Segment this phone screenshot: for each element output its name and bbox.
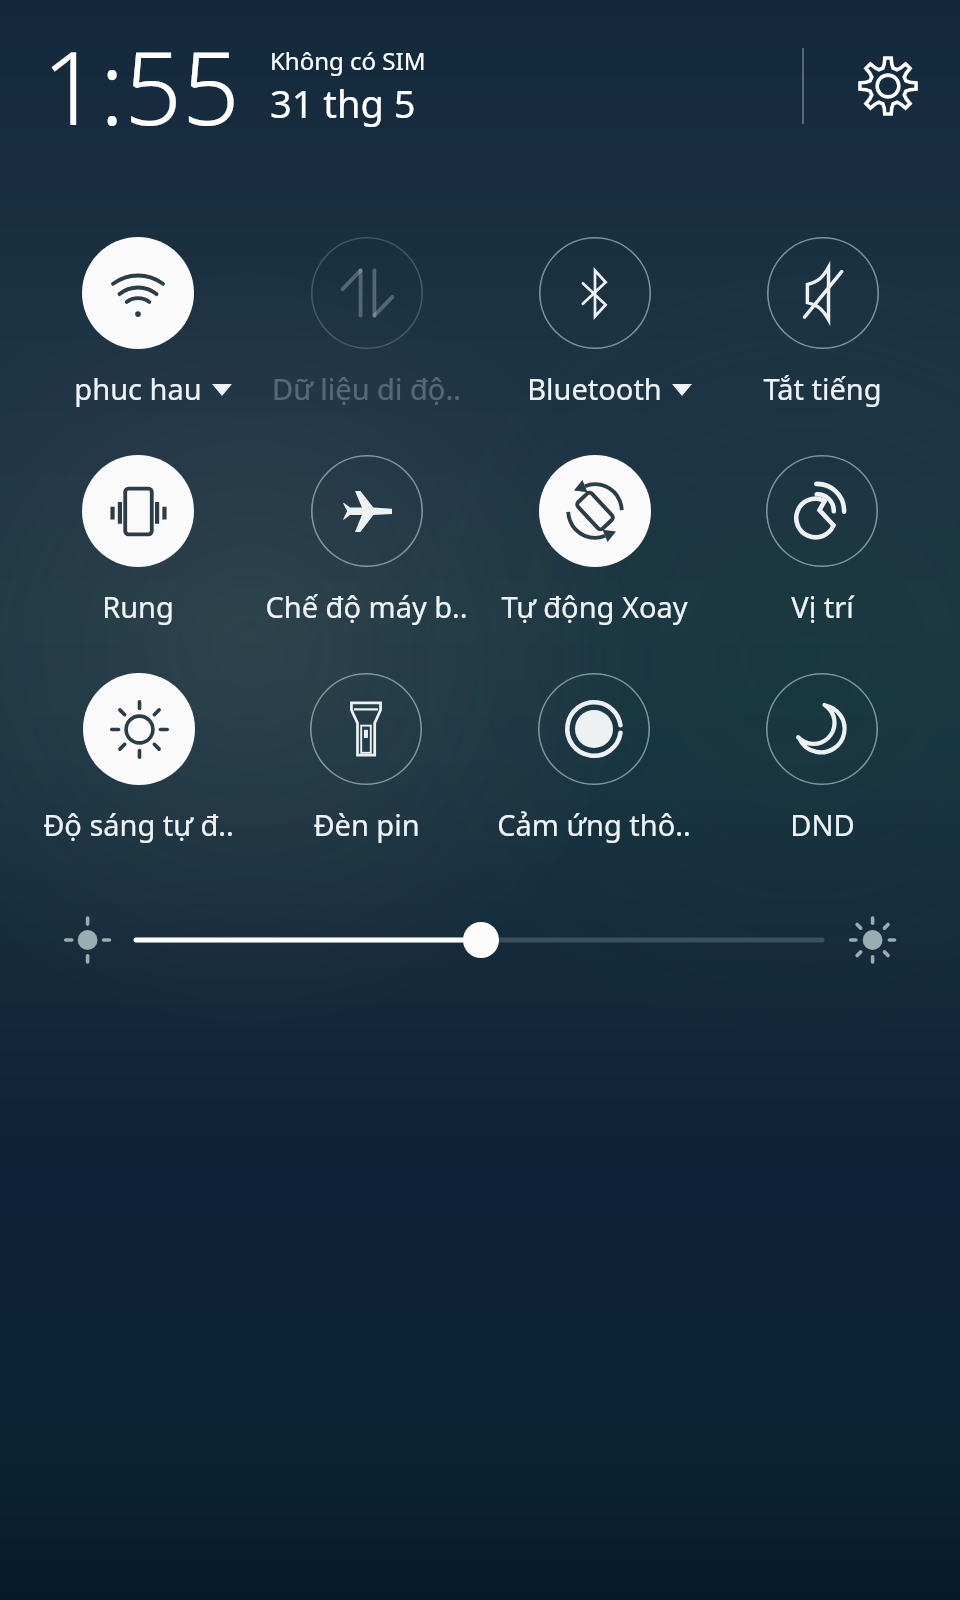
staticText: Tự động Xoay (501, 587, 688, 626)
staticText: Đèn pin (313, 805, 420, 844)
staticText: 1:55 (42, 17, 240, 155)
staticText: Độ sáng tự đ.. (43, 805, 234, 844)
staticText: Rung (102, 587, 174, 626)
button[interactable]: Độ sáng tự đ.. (43, 673, 234, 844)
staticText: 31 thg 5 (270, 77, 416, 129)
button[interactable]: Settings (840, 38, 936, 134)
staticText: Cảm ứng thô.. (497, 805, 691, 844)
staticText: Dữ liệu di độ.. (272, 369, 461, 408)
staticText: phuc hau (74, 369, 202, 408)
button[interactable]: Brightness (0, 885, 960, 995)
button[interactable]: phuc hau (74, 237, 202, 408)
staticText: Chế độ máy b.. (265, 587, 468, 626)
staticText: Vị trí (791, 587, 854, 626)
button[interactable]: Rung (82, 455, 194, 626)
button[interactable]: Đèn pin (310, 673, 422, 844)
button[interactable]: Tự động Xoay (501, 455, 688, 626)
button[interactable]: Bluetooth (527, 237, 662, 408)
button[interactable]: Dữ liệu di độ.. (272, 237, 461, 408)
button[interactable]: Cảm ứng thô.. (497, 673, 691, 844)
staticText: Không có SIM (270, 44, 426, 77)
staticText: Tắt tiếng (763, 369, 882, 408)
button[interactable]: Chế độ máy b.. (265, 455, 468, 626)
staticText: Bluetooth (527, 369, 662, 408)
button[interactable]: Vị trí (766, 455, 878, 626)
button[interactable]: DND (766, 673, 878, 844)
staticText: DND (790, 805, 855, 844)
button[interactable]: Tắt tiếng (763, 237, 882, 408)
